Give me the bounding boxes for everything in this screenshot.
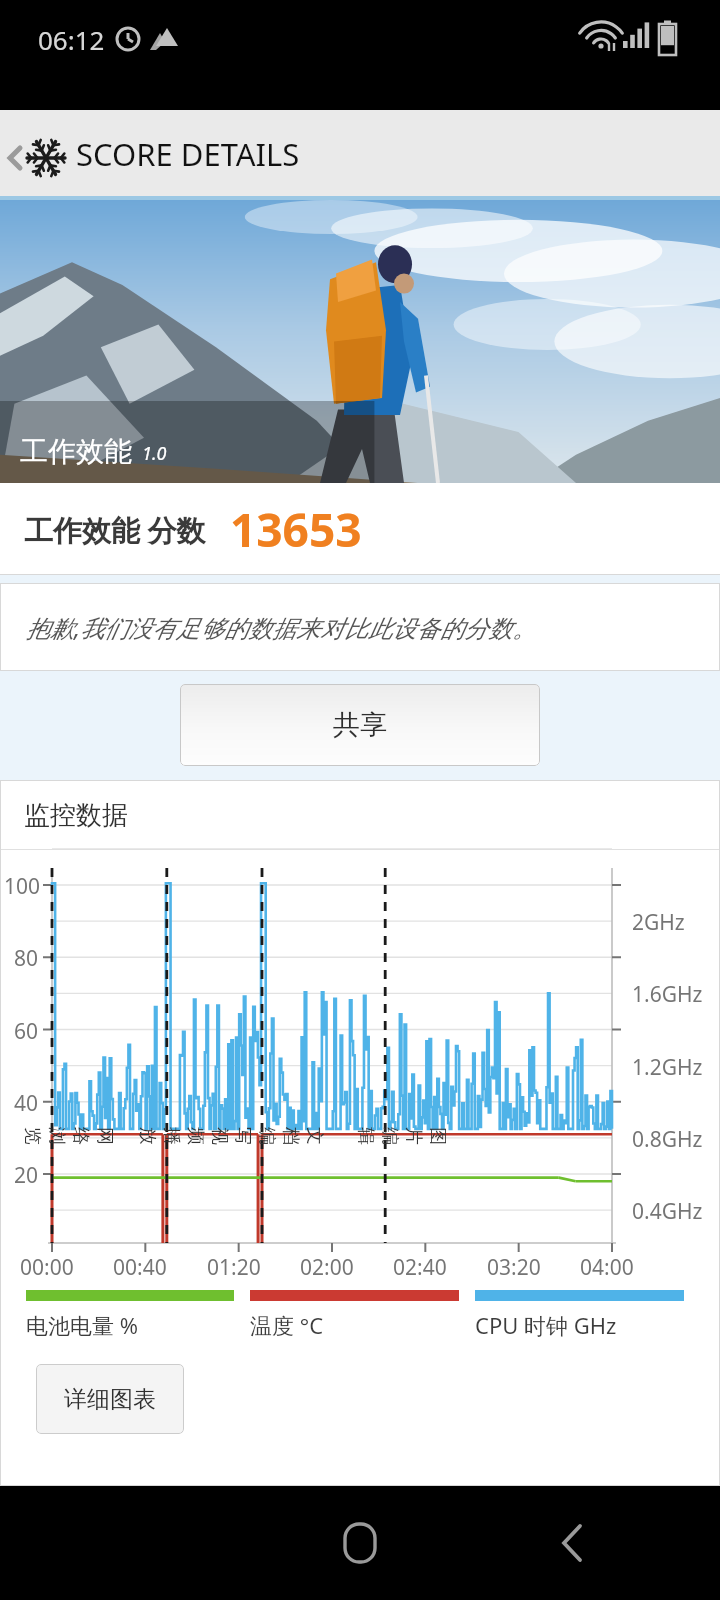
staticText: 1.0 (142, 441, 167, 466)
staticText: 抱歉,我们没有足够的数据来对比此设备的分数。 (26, 611, 537, 644)
staticText: 详细图表 (64, 1385, 156, 1414)
staticText: 0.8GHz (632, 1125, 703, 1154)
staticText: 100 (4, 872, 41, 901)
button[interactable]: 详细图表 (36, 1364, 184, 1434)
staticText: 1.6GHz (632, 980, 703, 1009)
button[interactable]: 共享 (180, 684, 540, 766)
staticText: 温度 °C (250, 1310, 324, 1340)
staticText: SCORE DETAILS (76, 133, 300, 175)
staticText: 20 (14, 1161, 39, 1190)
button[interactable]: SCORE DETAILS (0, 110, 720, 200)
staticText: 02:40 (393, 1253, 447, 1282)
staticText: 电池电量 % (26, 1310, 139, 1340)
staticText: 04:00 (580, 1253, 634, 1282)
staticText: 60 (14, 1017, 39, 1046)
staticText: 00:00 (20, 1253, 74, 1282)
staticText: 02:00 (300, 1253, 354, 1282)
staticText: 文档编写 (232, 1127, 326, 1153)
button[interactable]: 监控数据 (0, 780, 720, 850)
staticText: 监控数据 (24, 799, 128, 832)
staticText: 03:20 (487, 1253, 541, 1282)
staticText: 1.2GHz (632, 1053, 703, 1082)
staticText: 01:20 (207, 1253, 261, 1282)
staticText: 06:12 (38, 22, 105, 57)
staticText: 共享 (333, 708, 387, 742)
button[interactable]: CPU 时钟 GHz (475, 1290, 700, 1340)
staticText: 工作效能 (20, 434, 132, 469)
button[interactable]: 工作效能 分数 (0, 483, 720, 575)
button[interactable]: Back (532, 1503, 612, 1583)
staticText: 2GHz (632, 908, 685, 937)
staticText: 网络浏览 (22, 1127, 116, 1153)
staticText: 工作效能 分数 (24, 510, 206, 550)
button[interactable]: 电池电量 % (26, 1290, 250, 1340)
button[interactable]: Home (320, 1503, 400, 1583)
staticText: 13653 (230, 498, 362, 561)
button[interactable]: 抱歉,我们没有足够的数据来对比此设备的分数。 (0, 583, 720, 671)
staticText: 0.4GHz (632, 1197, 703, 1226)
button[interactable]: 温度 °C (250, 1290, 475, 1340)
staticText: CPU 时钟 GHz (475, 1310, 617, 1340)
staticText: 图片编辑 (355, 1127, 449, 1153)
staticText: 视频播放 (137, 1127, 231, 1153)
staticText: 40 (14, 1089, 39, 1118)
staticText: 00:40 (113, 1253, 167, 1282)
staticText: 80 (14, 944, 39, 973)
